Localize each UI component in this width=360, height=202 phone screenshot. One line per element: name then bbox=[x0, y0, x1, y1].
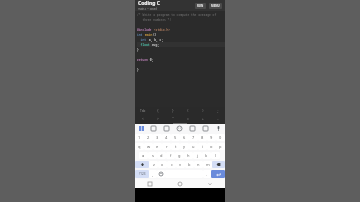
staticText: n bbox=[197, 162, 200, 167]
button[interactable]: { bbox=[150, 107, 165, 115]
staticText: o bbox=[210, 144, 213, 149]
button[interactable]: f bbox=[166, 152, 175, 159]
staticText: e bbox=[156, 144, 159, 149]
button[interactable]: ?123 bbox=[135, 170, 149, 178]
button[interactable]: t bbox=[171, 143, 180, 150]
staticText: c bbox=[171, 162, 173, 167]
button[interactable]: ) bbox=[195, 107, 210, 115]
button[interactable]: o bbox=[207, 143, 216, 150]
button[interactable]: + bbox=[195, 115, 210, 123]
button[interactable]: v bbox=[176, 161, 185, 168]
staticText: 0 bbox=[219, 135, 222, 140]
button[interactable]: Voice input bbox=[212, 124, 225, 133]
button[interactable]: j bbox=[193, 152, 202, 159]
button[interactable]: Keyboard bbox=[135, 124, 147, 133]
button[interactable]: b bbox=[185, 161, 194, 168]
button[interactable]: c bbox=[167, 161, 176, 168]
button[interactable]: a bbox=[139, 152, 148, 159]
button[interactable]: 4 bbox=[162, 134, 171, 141]
button[interactable]: Tab bbox=[135, 107, 150, 115]
button[interactable]: i bbox=[198, 143, 207, 150]
staticText: < bbox=[142, 117, 144, 121]
button[interactable]: y bbox=[180, 143, 189, 150]
button[interactable]: Recents bbox=[135, 179, 165, 188]
button[interactable]: 1 bbox=[135, 134, 144, 141]
button[interactable]: Clipboard bbox=[160, 124, 173, 133]
staticText: l bbox=[215, 153, 217, 158]
button[interactable]: e bbox=[153, 143, 162, 150]
staticText: () bbox=[153, 33, 157, 37]
button[interactable]: 9 bbox=[207, 134, 216, 141]
button[interactable]: 3 bbox=[153, 134, 162, 141]
button[interactable]: Theme bbox=[199, 124, 212, 133]
button[interactable]: n bbox=[194, 161, 203, 168]
button[interactable]: } bbox=[165, 107, 180, 115]
button[interactable]: GIF bbox=[147, 124, 160, 133]
button[interactable]: m bbox=[203, 161, 212, 168]
button[interactable]: p bbox=[216, 143, 225, 150]
staticText: t bbox=[175, 144, 177, 149]
staticText: b bbox=[188, 162, 191, 167]
button[interactable]: k bbox=[202, 152, 211, 159]
button[interactable]: 0 bbox=[216, 134, 225, 141]
button[interactable]: = bbox=[180, 115, 195, 123]
button[interactable]: l bbox=[211, 152, 220, 159]
staticText: 7 bbox=[192, 135, 195, 140]
staticText: " bbox=[172, 117, 174, 121]
button[interactable]: q bbox=[135, 143, 144, 150]
staticText: float bbox=[137, 43, 150, 47]
button[interactable]: . bbox=[203, 170, 211, 178]
button[interactable]: Back bbox=[195, 179, 225, 188]
button[interactable]: 6 bbox=[180, 134, 189, 141]
staticText: } bbox=[172, 109, 174, 113]
staticText: x bbox=[161, 162, 164, 167]
button[interactable]: 5 bbox=[171, 134, 180, 141]
button[interactable]: w bbox=[144, 143, 153, 150]
button[interactable]: Enter bbox=[211, 170, 225, 178]
staticText: k bbox=[205, 153, 208, 158]
button[interactable]: s bbox=[148, 152, 157, 159]
staticText: 1 bbox=[138, 135, 141, 140]
staticText: = bbox=[187, 117, 189, 121]
button[interactable]: , bbox=[149, 170, 157, 178]
staticText: avg; bbox=[150, 43, 160, 47]
staticText: ) bbox=[202, 109, 204, 113]
button[interactable]: 2 bbox=[144, 134, 153, 141]
button[interactable]: Sticker bbox=[186, 124, 199, 133]
button[interactable]: > bbox=[150, 115, 165, 123]
staticText: p bbox=[219, 144, 222, 149]
button[interactable]: u bbox=[189, 143, 198, 150]
staticText: a bbox=[142, 153, 145, 158]
staticText: z bbox=[153, 162, 155, 167]
button[interactable]: z bbox=[149, 161, 158, 168]
staticText: { bbox=[157, 109, 159, 113]
staticText: 0; bbox=[148, 58, 154, 62]
button[interactable]: r bbox=[162, 143, 171, 150]
button[interactable]: " bbox=[165, 115, 180, 123]
button[interactable]: RUN bbox=[195, 3, 206, 9]
staticText: r bbox=[166, 144, 168, 149]
button[interactable]: ( bbox=[180, 107, 195, 115]
staticText: h bbox=[187, 153, 190, 158]
button[interactable]: /* Write a program to compute the averag… bbox=[135, 11, 225, 107]
button[interactable]: Backspace bbox=[212, 161, 225, 168]
button[interactable]: 8 bbox=[198, 134, 207, 141]
staticText: g bbox=[178, 153, 181, 158]
button[interactable]: 7 bbox=[189, 134, 198, 141]
staticText: 2 bbox=[147, 135, 150, 140]
button[interactable]: Shift bbox=[135, 161, 149, 168]
button[interactable]: g bbox=[175, 152, 184, 159]
button[interactable]: x bbox=[158, 161, 167, 168]
button[interactable]: h bbox=[184, 152, 193, 159]
button[interactable]: Emoji bbox=[157, 170, 165, 178]
button[interactable]: Home bbox=[165, 179, 195, 188]
button[interactable]: < bbox=[135, 115, 150, 123]
button[interactable]: Emoji bbox=[173, 124, 186, 133]
button[interactable]: d bbox=[157, 152, 166, 159]
staticText: - bbox=[217, 117, 219, 121]
button[interactable]: MENU bbox=[209, 3, 222, 9]
